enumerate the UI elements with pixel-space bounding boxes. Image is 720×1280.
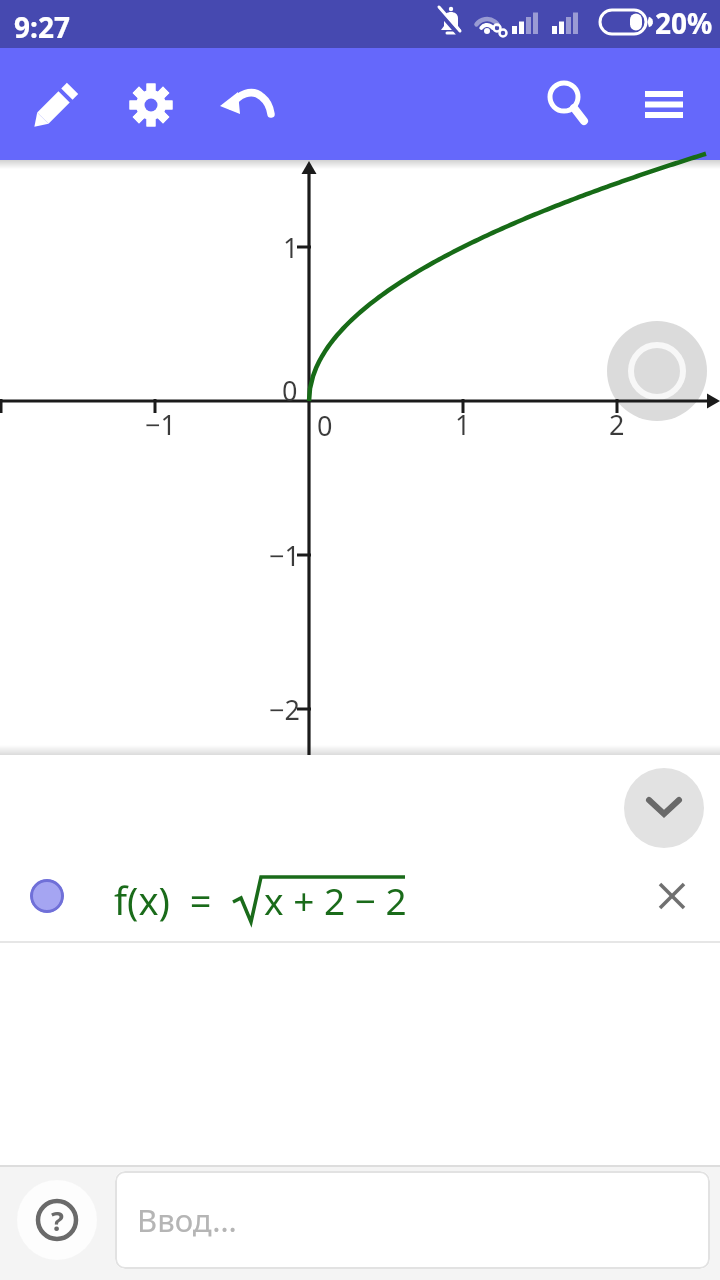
button[interactable]	[624, 64, 704, 144]
staticText: Ввод…	[137, 1199, 237, 1241]
staticText: f(x) =	[114, 874, 212, 926]
staticText: −2	[269, 691, 300, 728]
button[interactable]	[17, 64, 97, 144]
staticText: 1	[283, 229, 299, 266]
button[interactable]: Ввод…	[115, 1171, 710, 1269]
staticText: x + 2 − 2	[264, 875, 407, 925]
staticText: 9:27	[14, 8, 70, 46]
button[interactable]	[30, 879, 64, 913]
staticText: 0	[317, 407, 333, 444]
staticText: 2	[609, 406, 625, 443]
staticText: 20%	[655, 4, 713, 42]
staticText: ?	[51, 1202, 64, 1239]
staticText: −1	[269, 537, 300, 574]
button[interactable]: ?	[17, 1180, 97, 1260]
button[interactable]	[526, 64, 606, 144]
staticText: −1	[145, 406, 176, 443]
staticText: 0	[282, 372, 298, 409]
staticText: 1	[455, 406, 471, 443]
button[interactable]: f(x) =	[0, 860, 720, 940]
button[interactable]	[624, 768, 704, 848]
button[interactable]	[206, 64, 286, 144]
button[interactable]	[632, 856, 712, 936]
button[interactable]	[111, 64, 191, 144]
